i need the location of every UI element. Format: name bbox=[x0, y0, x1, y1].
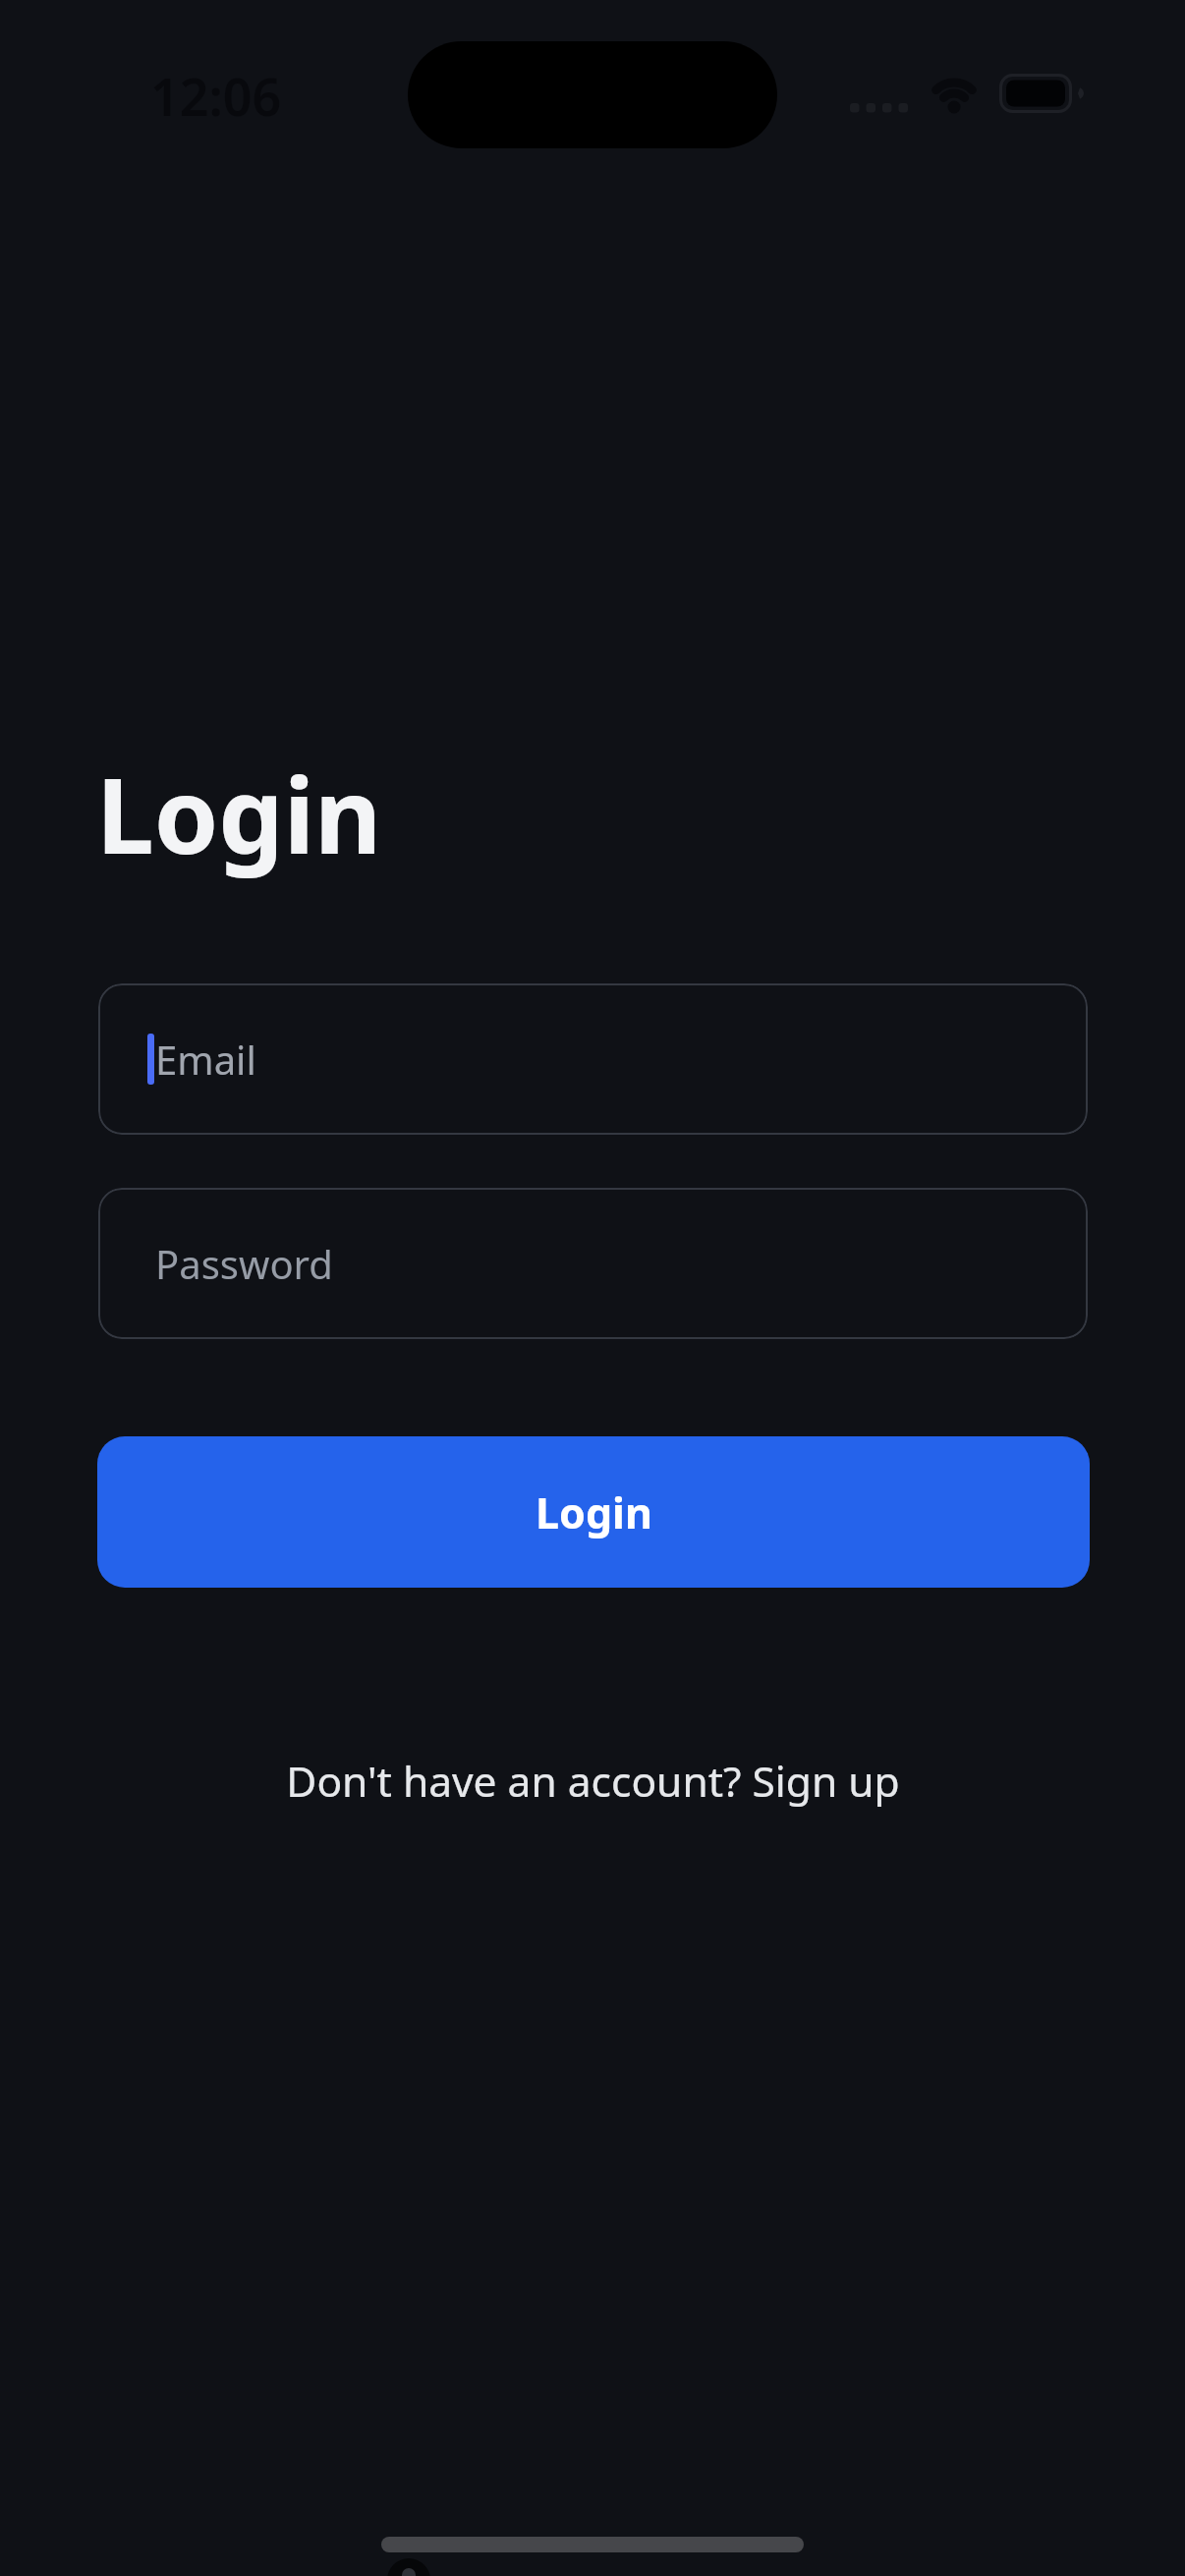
staticText: Email bbox=[155, 1033, 256, 1086]
button[interactable]: Email bbox=[98, 983, 1088, 1135]
button[interactable]: Password bbox=[98, 1188, 1088, 1339]
staticText: Password bbox=[155, 1237, 333, 1290]
button[interactable]: Login bbox=[97, 1436, 1090, 1588]
staticText: Login bbox=[96, 744, 382, 884]
button[interactable]: Don't have an account? Sign up bbox=[0, 1747, 1185, 1816]
staticText: 12:06 bbox=[150, 61, 282, 124]
staticText: Login bbox=[536, 1484, 652, 1541]
staticText: Don't have an account? Sign up bbox=[286, 1753, 900, 1810]
